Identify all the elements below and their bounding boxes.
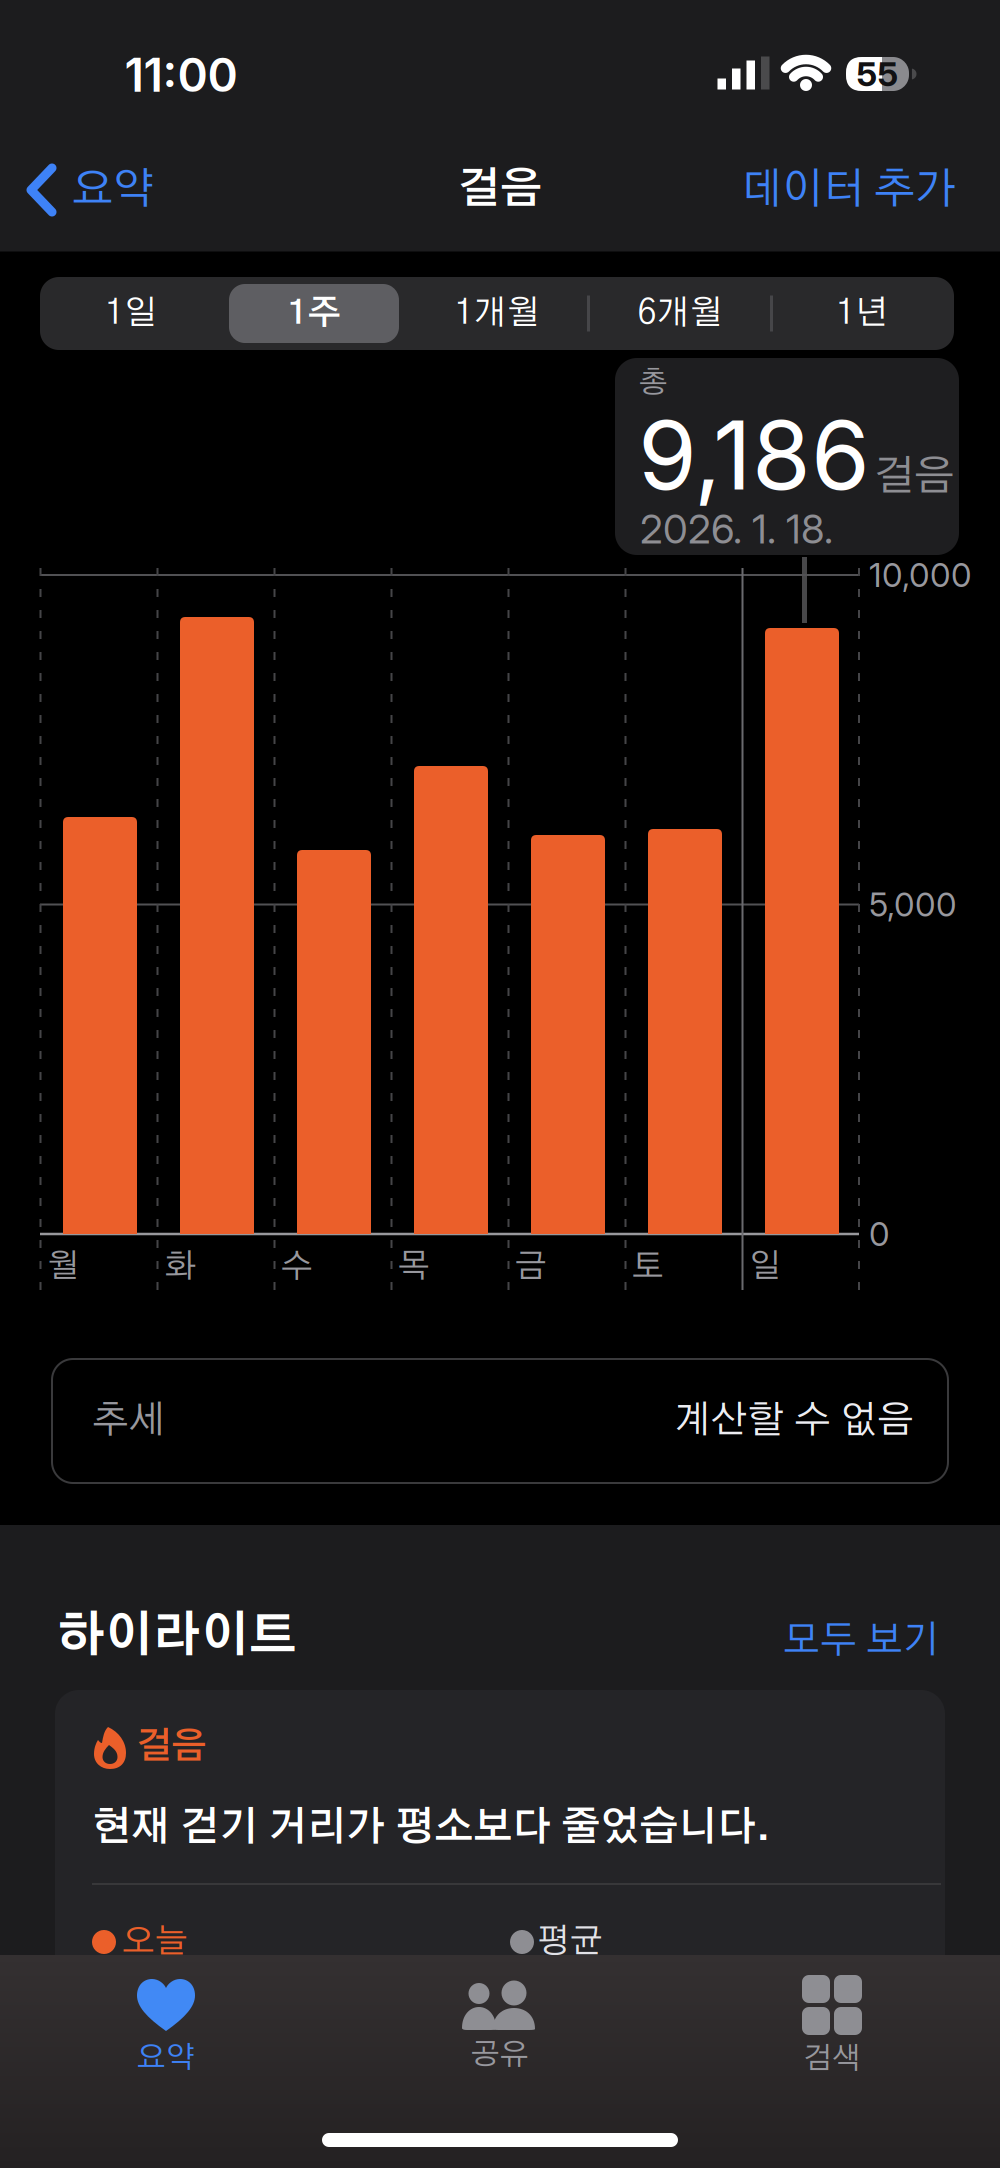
staticText: 현재 걷기 거리가 평소보다 줄었습니다. xyxy=(92,1808,770,1848)
staticText: 55 xyxy=(856,53,898,94)
button[interactable]: 데이터 추가 xyxy=(0,0,1000,2168)
staticText: 계산할 수 없음 xyxy=(674,1402,914,1440)
staticText: 수 xyxy=(281,1250,313,1284)
staticText: 걸음 xyxy=(874,456,954,498)
staticText: 1년 xyxy=(836,296,888,330)
staticText: 월 xyxy=(47,1250,79,1284)
button[interactable]: 걸음 xyxy=(55,1690,945,2168)
button[interactable]: 1개월 xyxy=(409,280,585,346)
button[interactable]: 추세 xyxy=(52,1359,948,1483)
staticText: 2026. 1. 18. xyxy=(640,505,833,553)
staticText: 목 xyxy=(398,1250,430,1284)
button[interactable]: 검색 xyxy=(732,1968,932,2080)
staticText: 공유 xyxy=(471,2040,529,2070)
staticText: 평균 xyxy=(537,1925,603,1959)
staticText: 모두 보기 xyxy=(783,1622,940,1660)
button[interactable]: 6개월 xyxy=(592,280,768,346)
staticText: 화 xyxy=(164,1250,196,1284)
staticText: 하이라이트 xyxy=(57,1613,297,1661)
staticText: 10,000 xyxy=(869,555,972,595)
staticText: 총 xyxy=(639,368,668,398)
staticText: 9,186 xyxy=(638,398,870,512)
staticText: 검색 xyxy=(803,2044,861,2074)
staticText: 걸음 xyxy=(458,168,542,211)
staticText: 1주 xyxy=(287,296,340,330)
staticText: 1일 xyxy=(105,296,157,330)
button[interactable]: 요약 xyxy=(26,165,154,215)
staticText: 오늘 xyxy=(122,1925,188,1959)
button[interactable]: 1일 xyxy=(43,280,219,346)
staticText: 요약 xyxy=(137,2043,195,2073)
staticText: 요약 xyxy=(72,168,154,211)
staticText: 금 xyxy=(515,1250,547,1284)
staticText: 걸음 xyxy=(136,1729,206,1765)
button[interactable]: 모두 보기 xyxy=(0,0,1000,2168)
button[interactable]: 요약 xyxy=(66,1970,266,2082)
button[interactable]: 1주 xyxy=(229,284,399,343)
staticText: 토 xyxy=(632,1250,664,1284)
staticText: 추세 xyxy=(92,1402,166,1440)
button[interactable]: 공유 xyxy=(400,1970,600,2082)
staticText: 데이터 추가 xyxy=(741,168,956,211)
staticText: 6개월 xyxy=(637,296,722,330)
staticText: 0 xyxy=(869,1214,890,1254)
staticText: 11:00 xyxy=(124,47,237,103)
staticText: 5,000 xyxy=(869,884,957,924)
button[interactable]: 1년 xyxy=(774,280,950,346)
staticText: 1개월 xyxy=(454,296,539,330)
staticText: 일 xyxy=(749,1250,781,1284)
